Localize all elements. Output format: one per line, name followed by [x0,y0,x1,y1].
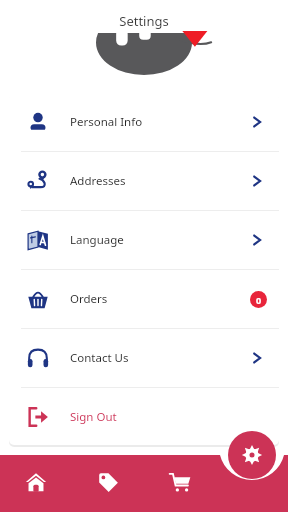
button[interactable]: Addresses [9,152,279,210]
button[interactable]: Offers [72,460,144,504]
button[interactable]: Sign Out [9,388,279,445]
staticText: 0 [256,294,262,306]
staticText: Language [70,232,124,248]
button[interactable]: Settings [228,431,276,479]
staticText: Sign Out [70,409,117,425]
staticText: Orders [70,291,108,307]
button[interactable]: Language [9,211,279,269]
button[interactable]: Personal Info [9,93,279,151]
button[interactable]: Home [0,460,72,504]
staticText: Addresses [70,173,126,189]
staticText: Personal Info [70,114,143,130]
button[interactable]: Orders [9,270,279,328]
button[interactable]: Cart [144,460,216,504]
button[interactable]: Contact Us [9,329,279,387]
staticText: Settings [0,12,288,30]
staticText: Contact Us [70,350,129,366]
